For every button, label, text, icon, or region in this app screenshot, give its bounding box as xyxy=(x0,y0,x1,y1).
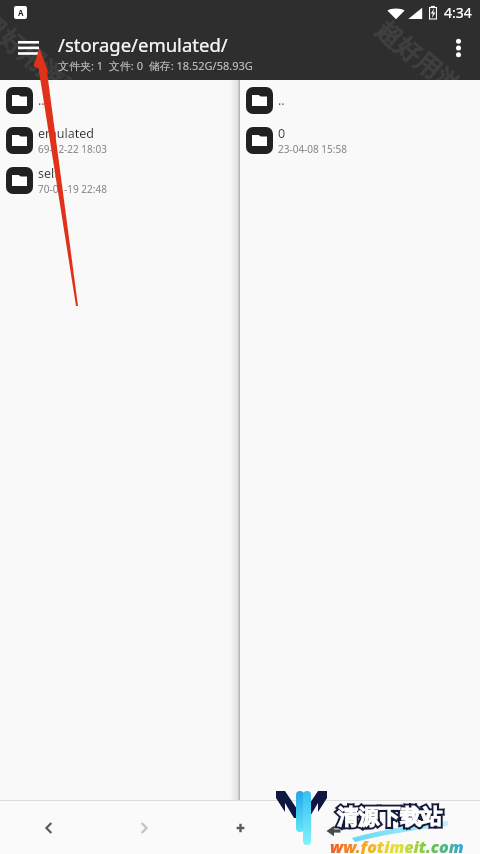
button[interactable]: emulated xyxy=(0,120,238,160)
button[interactable]: self xyxy=(0,160,238,200)
button[interactable]: .. xyxy=(240,80,480,120)
staticText: 0 xyxy=(278,125,286,142)
staticText: .. xyxy=(278,92,285,109)
button[interactable]: Navigate back xyxy=(288,801,384,854)
staticText: 4:34 xyxy=(444,3,472,22)
button[interactable]: 0 xyxy=(240,120,480,160)
staticText: A xyxy=(18,7,24,18)
staticText: 23-04-08 15:58 xyxy=(278,142,347,156)
button[interactable]: Forward xyxy=(96,801,192,854)
staticText: 超好用游戏软件 xyxy=(370,14,480,80)
staticText: 清源下载站 xyxy=(337,804,442,830)
staticText: .. xyxy=(38,92,45,109)
staticText: 70-01-19 22:48 xyxy=(38,182,107,196)
button[interactable]: Add xyxy=(192,801,288,854)
button[interactable]: .. xyxy=(0,80,238,120)
staticText: 文件夹: 1 文件: 0 储存: 18.52G/58.93G xyxy=(58,58,253,73)
staticText: self xyxy=(38,165,59,182)
staticText: /storage/emulated/ xyxy=(58,32,228,57)
button[interactable]: Menu xyxy=(0,25,56,80)
staticText: 69-12-22 18:03 xyxy=(38,142,107,156)
staticText: 超好用游戏软件 xyxy=(0,6,128,80)
button[interactable]: More options xyxy=(436,25,480,80)
staticText: 清源下载站 xyxy=(337,804,442,830)
staticText: emulated xyxy=(38,125,94,142)
button[interactable]: Back xyxy=(0,801,96,854)
staticText: ww.fotimeit.com xyxy=(330,836,464,854)
